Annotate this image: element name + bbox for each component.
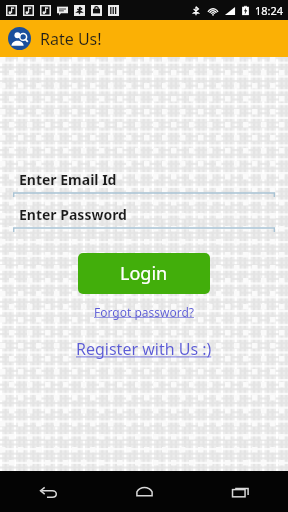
- staticText: Login: [120, 261, 168, 286]
- button[interactable]: Home: [96, 471, 192, 512]
- button[interactable]: Forgot password?: [90, 302, 199, 322]
- button[interactable]: Login: [78, 253, 210, 294]
- button[interactable]: Enter Password: [0, 205, 288, 232]
- button[interactable]: Back: [0, 471, 96, 512]
- staticText: Register with Us :): [76, 338, 212, 360]
- button[interactable]: Register with Us :): [72, 336, 216, 362]
- staticText: Rate Us!: [40, 28, 102, 50]
- staticText: 18:24: [255, 3, 284, 18]
- other: App icon: [8, 27, 31, 50]
- staticText: Forgot password?: [94, 304, 195, 320]
- staticText: Enter Email Id: [19, 170, 117, 189]
- button[interactable]: App icon: [0, 20, 288, 57]
- button[interactable]: Enter Email Id: [0, 170, 288, 197]
- staticText: Enter Password: [19, 205, 127, 224]
- button[interactable]: Recent apps: [192, 471, 288, 512]
